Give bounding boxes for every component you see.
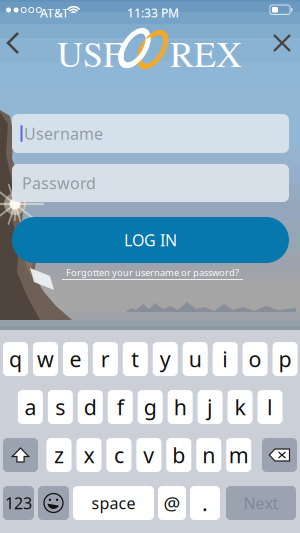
button[interactable] xyxy=(48,390,73,424)
staticText: @ xyxy=(163,491,180,515)
staticText: o xyxy=(249,345,262,373)
button[interactable] xyxy=(3,342,28,376)
button[interactable] xyxy=(168,390,193,424)
staticText: Password xyxy=(22,172,96,194)
button[interactable] xyxy=(108,390,133,424)
staticText: space xyxy=(91,492,135,514)
staticText: v xyxy=(143,441,154,469)
staticText: f xyxy=(117,393,124,421)
staticText: . xyxy=(202,489,208,517)
button[interactable] xyxy=(63,342,88,376)
button[interactable] xyxy=(3,486,34,520)
staticText: e xyxy=(69,345,81,373)
button[interactable] xyxy=(190,486,220,520)
button[interactable] xyxy=(257,390,282,424)
staticText: c xyxy=(114,441,124,469)
staticText: j xyxy=(207,393,213,421)
staticText: m xyxy=(229,441,249,469)
staticText: t xyxy=(131,345,139,373)
staticText: b xyxy=(172,441,185,469)
staticText: i xyxy=(222,345,228,373)
staticText: Username xyxy=(24,123,103,144)
button[interactable] xyxy=(18,390,43,424)
button[interactable] xyxy=(138,390,163,424)
button[interactable] xyxy=(198,390,223,424)
staticText: Next xyxy=(243,492,278,514)
button[interactable] xyxy=(73,486,154,520)
staticText: q xyxy=(9,345,22,373)
button[interactable]: Shift xyxy=(3,438,38,472)
staticText: w xyxy=(37,345,54,373)
button[interactable] xyxy=(46,438,71,472)
button[interactable] xyxy=(196,438,221,472)
staticText: Forgotten your username or password? xyxy=(66,266,239,279)
staticText: l xyxy=(267,393,273,421)
button[interactable]: Delete xyxy=(262,438,297,472)
staticText: AT&T xyxy=(40,5,69,21)
staticText: LOG IN xyxy=(124,229,177,251)
button[interactable] xyxy=(243,342,268,376)
button[interactable] xyxy=(78,390,103,424)
staticText: x xyxy=(83,441,94,469)
button[interactable] xyxy=(76,438,101,472)
button[interactable] xyxy=(158,486,186,520)
button[interactable] xyxy=(106,438,131,472)
staticText: s xyxy=(55,393,65,421)
button[interactable] xyxy=(226,486,296,520)
staticText: y xyxy=(160,345,171,373)
button[interactable]: Close xyxy=(265,20,299,66)
staticText: g xyxy=(144,393,157,421)
staticText: d xyxy=(84,393,97,421)
staticText: k xyxy=(235,393,246,421)
button[interactable] xyxy=(183,342,208,376)
staticText: USF xyxy=(57,29,123,77)
staticText: z xyxy=(54,441,64,469)
button[interactable]: Back xyxy=(2,20,36,66)
button[interactable]: Emoji xyxy=(38,486,69,520)
button[interactable] xyxy=(228,390,253,424)
button[interactable] xyxy=(136,438,161,472)
button[interactable] xyxy=(33,342,58,376)
staticText: REX xyxy=(170,29,242,77)
staticText: 11:33 PM xyxy=(127,5,179,21)
button[interactable] xyxy=(93,342,118,376)
staticText: p xyxy=(279,345,292,373)
button[interactable] xyxy=(273,342,298,376)
button[interactable] xyxy=(226,438,251,472)
button[interactable] xyxy=(123,342,148,376)
button[interactable] xyxy=(166,438,191,472)
button[interactable] xyxy=(153,342,178,376)
staticText: a xyxy=(24,393,36,421)
staticText: u xyxy=(189,345,202,373)
staticText: 123 xyxy=(5,492,32,514)
staticText: n xyxy=(202,441,215,469)
staticText: r xyxy=(101,345,110,373)
button[interactable] xyxy=(213,342,238,376)
button[interactable]: Forgotten your username or password? xyxy=(61,266,244,280)
button[interactable]: LOG IN xyxy=(12,217,289,263)
staticText: h xyxy=(174,393,187,421)
